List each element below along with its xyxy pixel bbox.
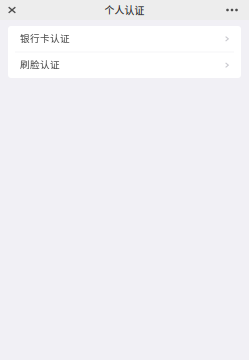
button[interactable]: 银行卡认证 — [8, 26, 241, 52]
staticText: 个人认证 — [104, 3, 144, 17]
staticText: 刷脸认证 — [20, 57, 60, 71]
staticText: 银行卡认证 — [20, 31, 70, 45]
button[interactable]: 刷脸认证 — [8, 52, 241, 78]
button[interactable]: Close — [0, 0, 24, 20]
button[interactable]: More — [218, 0, 246, 20]
